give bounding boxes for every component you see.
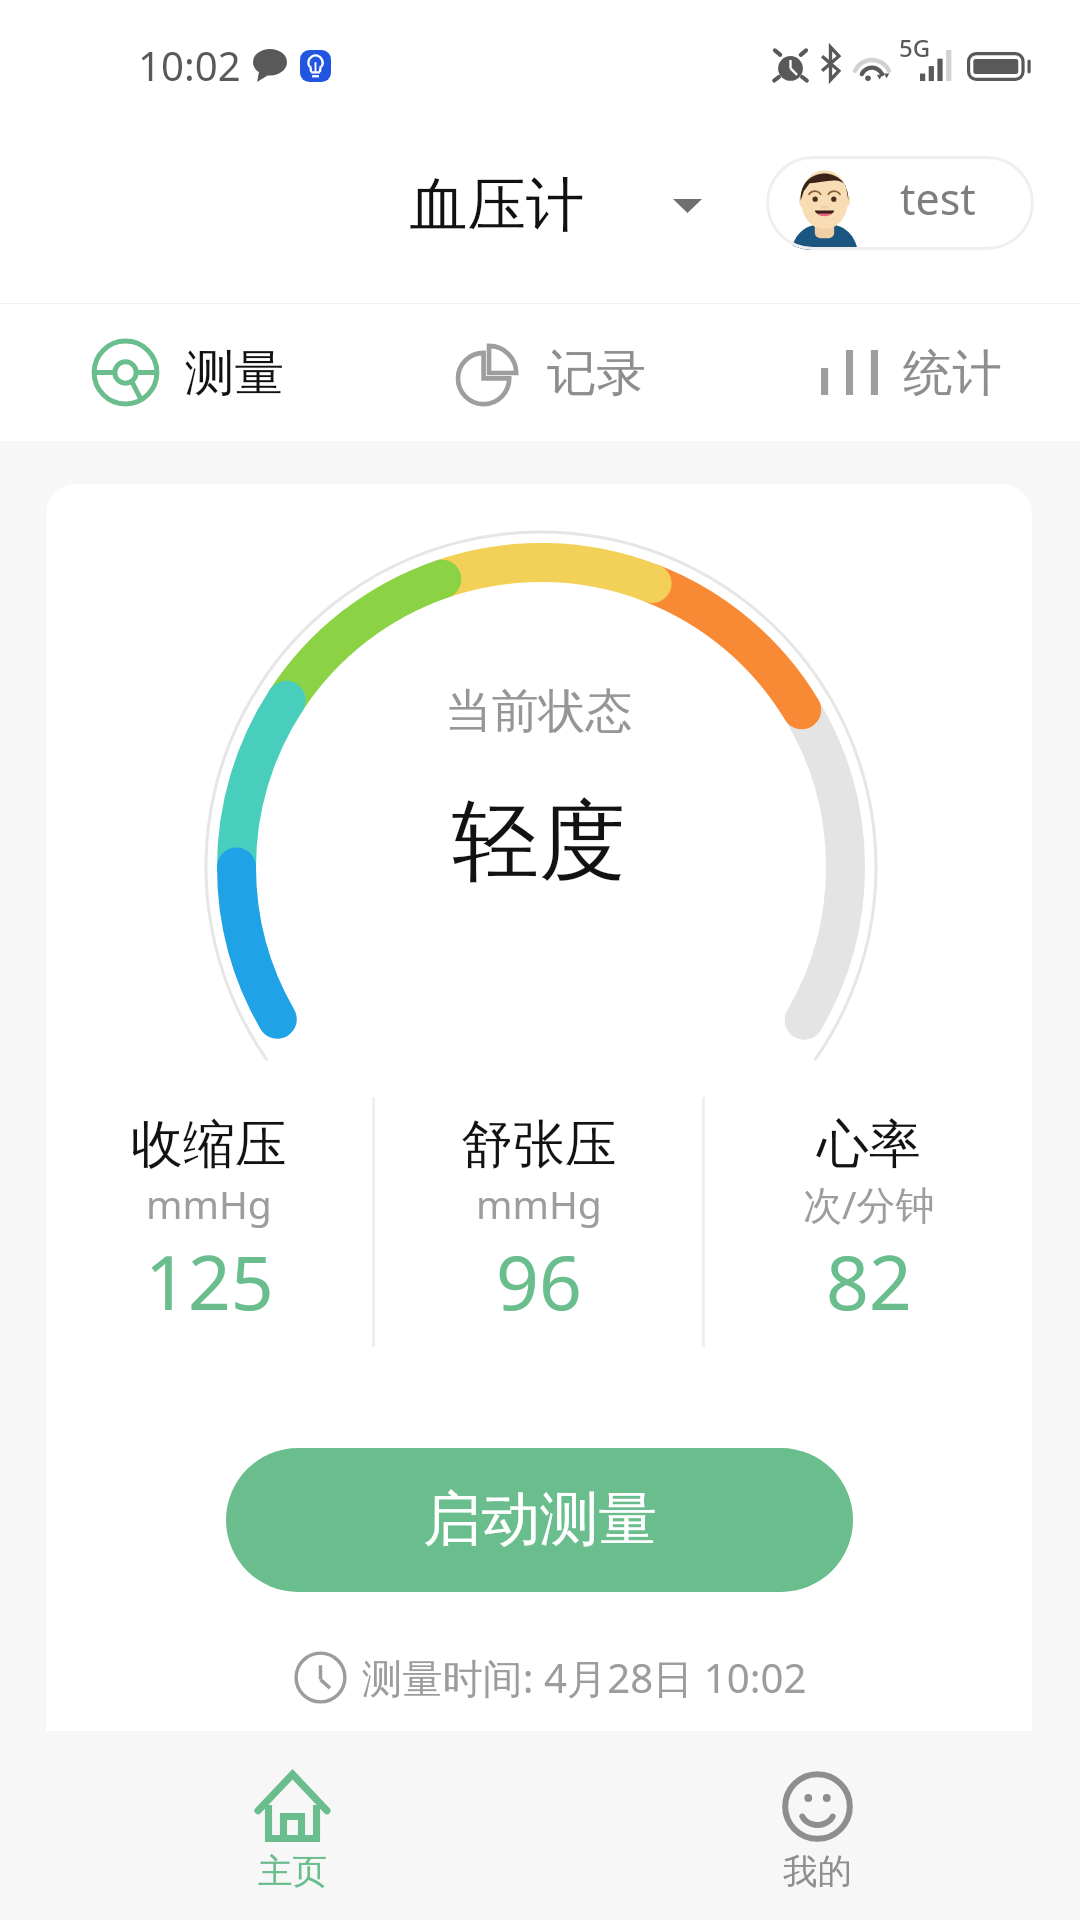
- button[interactable]: 启动测量: [226, 1448, 853, 1592]
- button[interactable]: 统计: [723, 304, 1080, 441]
- staticText: 10:02: [138, 38, 241, 93]
- staticText: 82: [826, 1230, 912, 1332]
- staticText: 测量时间: 4月28日 10:02: [362, 1650, 807, 1705]
- staticText: 我的: [783, 1850, 852, 1893]
- staticText: 记录: [547, 342, 646, 404]
- staticText: mmHg: [476, 1177, 602, 1230]
- staticText: 收缩压: [131, 1112, 287, 1177]
- button[interactable]: 血压计: [409, 169, 702, 243]
- button[interactable]: 记录: [366, 304, 723, 441]
- staticText: test: [900, 169, 976, 227]
- button[interactable]: Home: [30, 1731, 555, 1920]
- other: Home: [255, 1771, 330, 1842]
- staticText: 次/分钟: [803, 1177, 935, 1230]
- staticText: 125: [145, 1230, 274, 1332]
- other: Profile: [782, 1771, 853, 1842]
- staticText: 主页: [258, 1850, 327, 1893]
- staticText: 心率: [817, 1112, 921, 1177]
- button[interactable]: 测量: [9, 304, 366, 441]
- staticText: 轻度: [452, 787, 626, 897]
- staticText: 血压计: [409, 169, 585, 243]
- button[interactable]: test: [766, 156, 1034, 250]
- button[interactable]: Profile: [555, 1731, 1080, 1920]
- staticText: 当前状态: [445, 682, 633, 741]
- staticText: 96: [496, 1230, 582, 1332]
- staticText: 启动测量: [423, 1483, 657, 1557]
- staticText: 统计: [903, 342, 1002, 404]
- staticText: 舒张压: [461, 1112, 617, 1177]
- staticText: 5G: [899, 31, 931, 62]
- staticText: 测量: [185, 342, 284, 404]
- staticText: mmHg: [146, 1177, 272, 1230]
